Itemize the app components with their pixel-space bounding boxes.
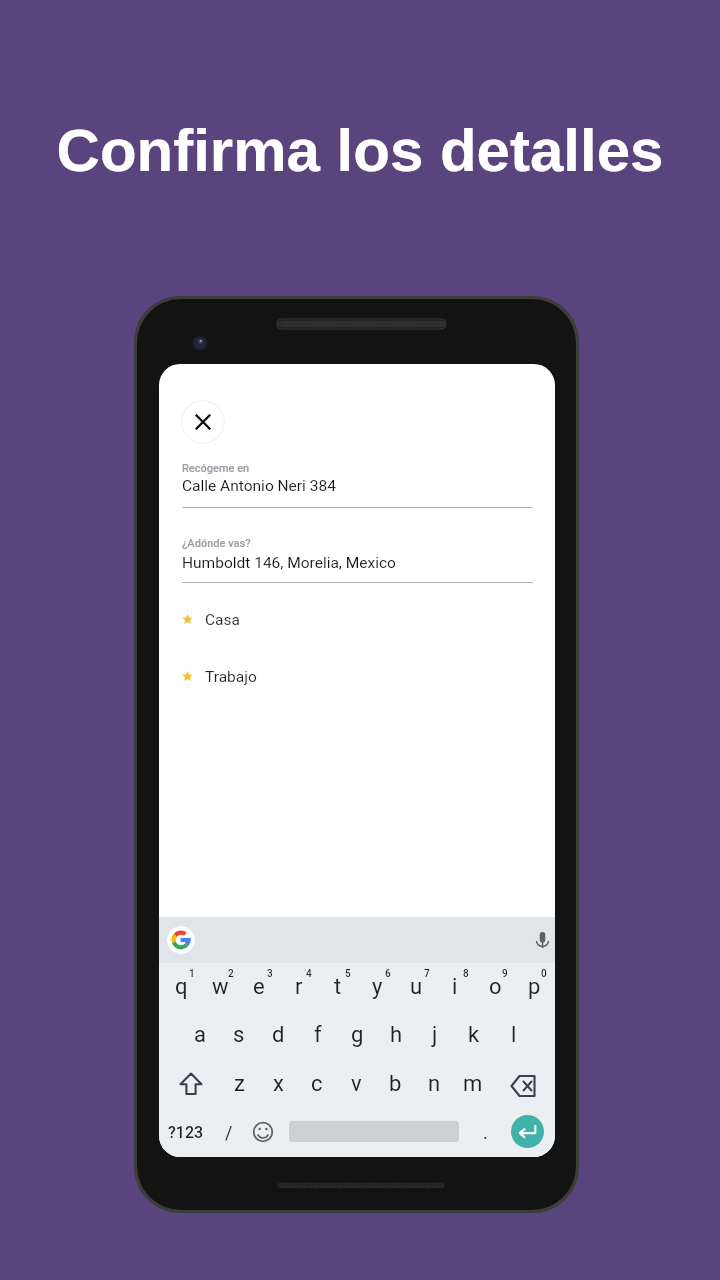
staticText: /	[225, 1122, 233, 1143]
staticText: w	[212, 974, 229, 1000]
button[interactable]: a	[181, 1014, 219, 1056]
staticText: 1	[189, 968, 195, 980]
button[interactable]: d	[259, 1014, 297, 1056]
button[interactable]: /	[214, 1111, 244, 1153]
staticText: 2	[228, 968, 234, 980]
button[interactable]: z	[220, 1063, 258, 1105]
staticText: 6	[385, 968, 391, 980]
staticText: Trabajo	[205, 668, 257, 686]
staticText: c	[311, 1071, 323, 1097]
staticText: d	[272, 1022, 285, 1048]
button[interactable]: h	[377, 1014, 415, 1056]
staticText: 8	[463, 968, 469, 980]
button[interactable]: t	[319, 966, 357, 1008]
staticText: Recógeme en	[182, 462, 250, 475]
staticText: s	[233, 1022, 245, 1048]
button[interactable]: Google Search	[167, 926, 195, 954]
staticText: 4	[306, 968, 312, 980]
button[interactable]: Shift	[168, 1063, 214, 1105]
staticText: a	[194, 1022, 206, 1048]
staticText: ¿Adónde vas?	[182, 537, 251, 550]
button[interactable]: v	[337, 1063, 375, 1105]
staticText: Humboldt 146, Morelia, Mexico	[182, 554, 396, 572]
button[interactable]: i	[436, 966, 474, 1008]
staticText: b	[389, 1071, 402, 1097]
button[interactable]: q	[162, 966, 200, 1008]
button[interactable]: e	[240, 966, 278, 1008]
staticText: j	[432, 1022, 438, 1048]
staticText: r	[295, 974, 303, 1000]
staticText: 0	[541, 968, 547, 980]
staticText: ?123	[168, 1123, 204, 1142]
staticText: u	[410, 974, 423, 1000]
staticText: n	[428, 1071, 441, 1097]
button[interactable]: Voice input	[531, 929, 554, 952]
button[interactable]: l	[495, 1014, 533, 1056]
button[interactable]: r	[280, 966, 318, 1008]
button[interactable]: m	[454, 1063, 492, 1105]
button[interactable]: o	[476, 966, 514, 1008]
staticText: h	[390, 1022, 403, 1048]
staticText: v	[351, 1071, 362, 1097]
button[interactable]: Trabajo	[159, 654, 555, 698]
button[interactable]: ¿Adónde vas?	[159, 531, 555, 588]
button[interactable]: ?123	[159, 1111, 214, 1153]
button[interactable]: Enter	[511, 1115, 544, 1148]
button[interactable]: Backspace	[500, 1065, 546, 1107]
staticText: Casa	[205, 611, 240, 629]
staticText: y	[372, 974, 383, 1000]
staticText: i	[452, 974, 458, 1000]
button[interactable]: w	[201, 966, 239, 1008]
button[interactable]: j	[416, 1014, 454, 1056]
staticText: o	[489, 974, 502, 1000]
button[interactable]: k	[455, 1014, 493, 1056]
staticText: 3	[267, 968, 273, 980]
staticText: Calle Antonio Neri 384	[182, 477, 336, 495]
button[interactable]: c	[298, 1063, 336, 1105]
button[interactable]: p	[515, 966, 553, 1008]
button[interactable]: f	[299, 1014, 337, 1056]
button[interactable]: g	[338, 1014, 376, 1056]
staticText: l	[511, 1022, 517, 1048]
button[interactable]: Emoji	[246, 1112, 280, 1152]
button[interactable]: b	[376, 1063, 414, 1105]
staticText: t	[334, 974, 342, 1000]
button[interactable]: x	[259, 1063, 297, 1105]
staticText: Confirma los detalles	[0, 117, 720, 184]
button[interactable]: .	[472, 1112, 498, 1152]
staticText: 7	[424, 968, 430, 980]
button[interactable]: Close	[181, 400, 225, 444]
staticText: g	[351, 1022, 364, 1048]
staticText: e	[253, 974, 265, 1000]
staticText: z	[234, 1071, 245, 1097]
staticText: f	[314, 1022, 322, 1048]
staticText: 9	[502, 968, 508, 980]
staticText: m	[463, 1071, 483, 1097]
button[interactable]: Recógeme en	[159, 456, 555, 513]
staticText: 5	[345, 968, 351, 980]
button[interactable]: s	[220, 1014, 258, 1056]
staticText: q	[175, 974, 188, 1000]
button[interactable]: Casa	[159, 597, 555, 641]
button[interactable]: n	[415, 1063, 453, 1105]
button[interactable]: y	[358, 966, 396, 1008]
staticText: .	[483, 1122, 488, 1143]
staticText: k	[468, 1022, 480, 1048]
button[interactable]: u	[397, 966, 435, 1008]
staticText: x	[273, 1071, 284, 1097]
staticText: p	[528, 974, 541, 1000]
